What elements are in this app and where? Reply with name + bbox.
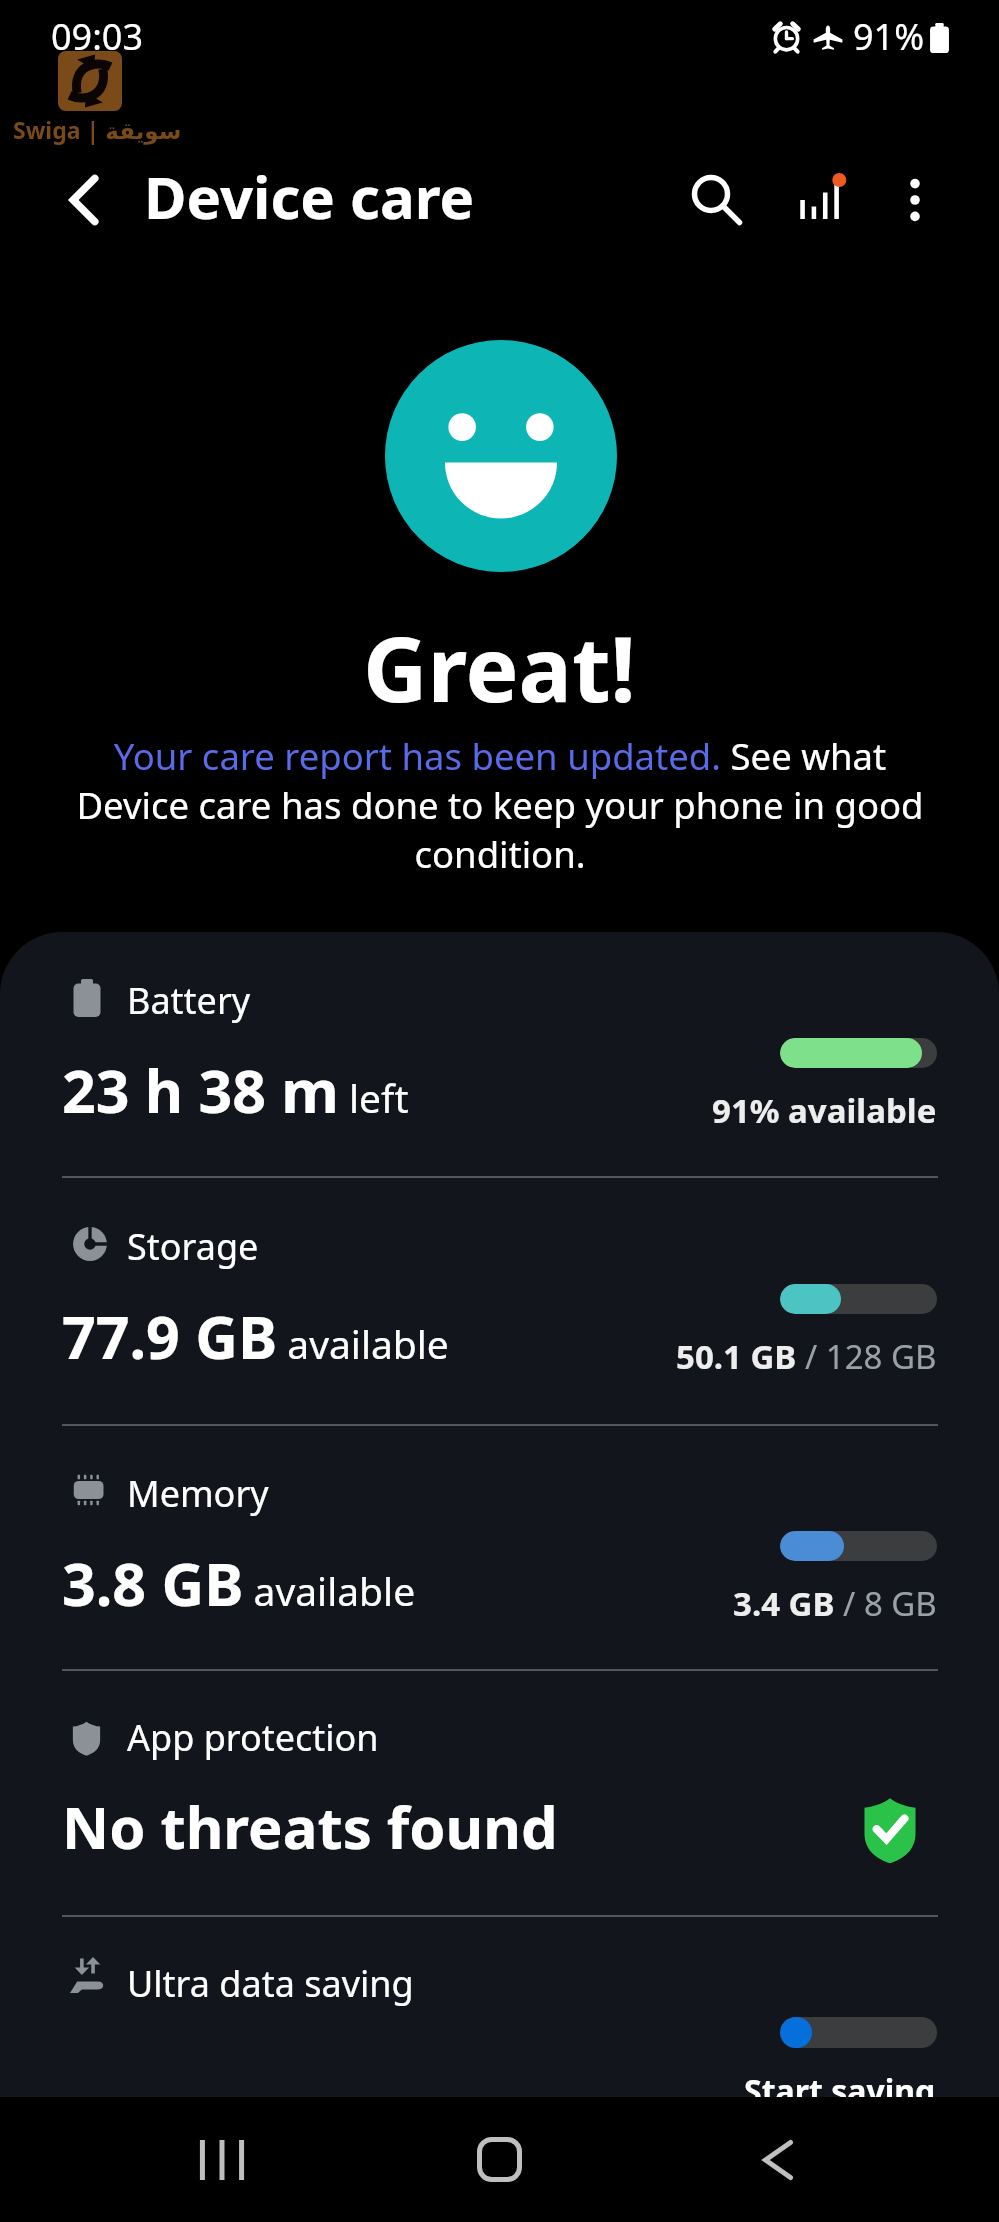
button[interactable]: Home [444,2097,554,2222]
staticText: Start saving [744,2069,936,2097]
staticText: Great! [363,607,636,728]
button[interactable]: Recent apps [167,2097,277,2222]
button[interactable]: Ultra data saving [0,1917,999,2097]
button[interactable]: More options [862,147,968,253]
staticText: Memory [127,1469,269,1518]
button[interactable]: Battery [0,932,999,1176]
button[interactable]: Back [723,2097,833,2222]
staticText: 77.9 GB available [62,1296,449,1376]
staticText: Your care report has been updated. See w… [71,731,929,879]
staticText: 3.8 GB available [62,1543,416,1623]
staticText: No threats found [62,1787,558,1866]
staticText: App protection [127,1713,379,1762]
button[interactable]: Usage statistics [767,145,877,255]
staticText: 09:03 [51,12,144,61]
staticText: Ultra data saving [127,1959,414,2008]
staticText: Swiga | سويقة [13,114,182,145]
button[interactable]: Search [662,145,772,255]
staticText: Device care [144,157,475,236]
staticText: 91% available [712,1088,937,1133]
staticText: 23 h 38 m left [62,1050,409,1130]
staticText: 91% [853,12,925,61]
button[interactable]: Memory [0,1425,999,1669]
button[interactable]: Storage [0,1178,999,1422]
staticText: 3.4 GB / 8 GB [733,1581,937,1626]
staticText: Storage [127,1222,259,1271]
staticText: Battery [127,976,251,1025]
button[interactable]: App protection [0,1671,999,1915]
button[interactable]: Navigate up [29,145,139,255]
staticText: 50.1 GB / 128 GB [676,1334,937,1379]
